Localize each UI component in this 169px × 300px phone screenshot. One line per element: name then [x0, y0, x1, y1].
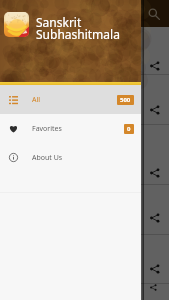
staticText: About Us	[32, 153, 63, 163]
button[interactable]: All	[0, 85, 141, 114]
button[interactable]: Share	[149, 263, 160, 274]
staticText: तदा सर्वज्ञोऽस्मीत्यभवदवलिप्तं मम मनः	[7, 41, 116, 52]
button[interactable]: Share	[149, 167, 160, 178]
staticText: यदा किञ्चिज्ज्ञोऽहं द्विप इव मदान्धः सम …	[7, 30, 141, 41]
staticText: 500	[120, 96, 131, 104]
staticText: Favorites	[32, 124, 62, 134]
button[interactable]: Share	[149, 60, 160, 71]
button[interactable]: Share	[149, 284, 160, 291]
button[interactable]: Share	[149, 212, 160, 223]
staticText: इति सुभाषितम्	[7, 150, 49, 161]
button[interactable]: About Us	[0, 143, 141, 172]
button[interactable]: Search	[144, 4, 164, 24]
staticText: Subhashitmala	[36, 26, 120, 42]
staticText: उद्यमेन हि सिध्यन्ति कार्याणि न मनो	[7, 78, 106, 89]
staticText: विद्या ददाति विनयं विनयाद् याति पात्र	[7, 128, 111, 139]
button[interactable]: Share	[149, 104, 160, 115]
staticText: न हि सुप्तस्य सिंहस्य प्रविशन्ति मुखे	[7, 89, 105, 100]
staticText: 0	[127, 125, 131, 133]
button[interactable]: Favorites	[0, 114, 141, 143]
staticText: All	[32, 95, 41, 105]
staticText: Sanskrit	[36, 14, 82, 30]
